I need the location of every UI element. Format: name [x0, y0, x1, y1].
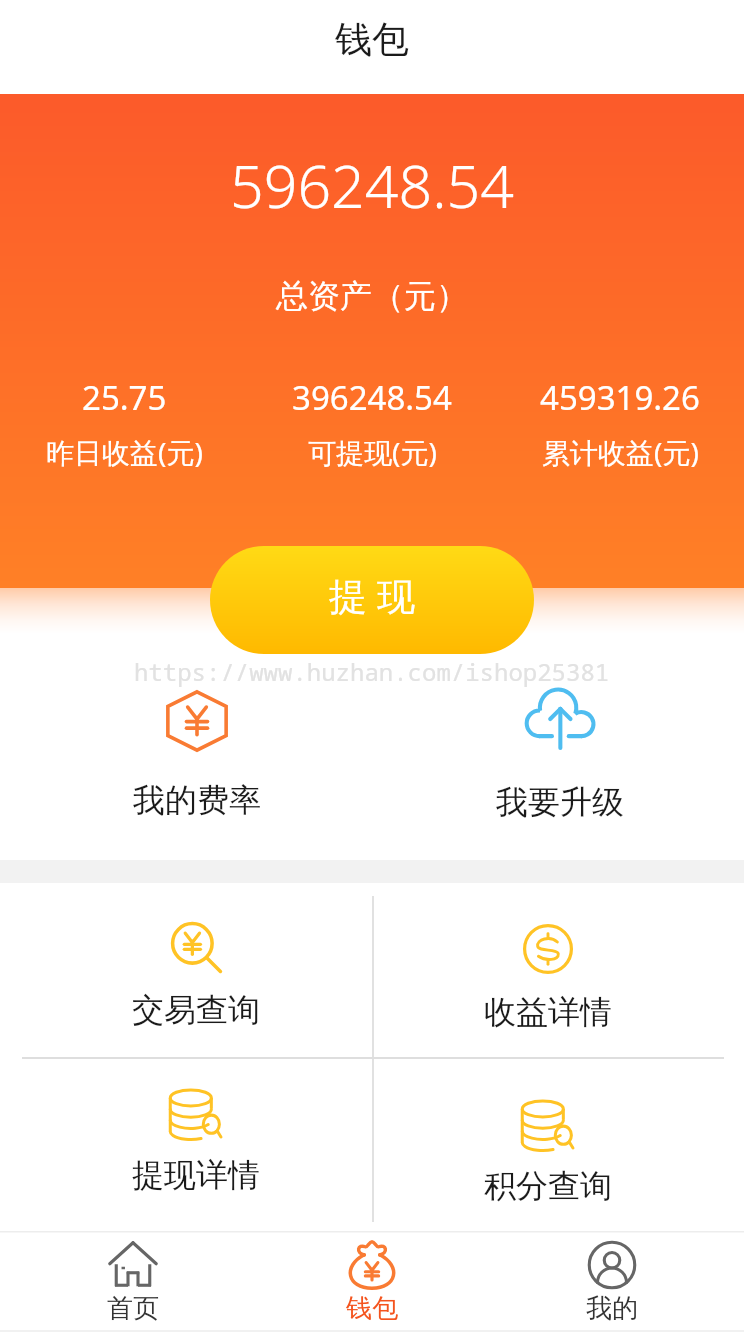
staticText: 我要升级 — [496, 782, 624, 822]
other: 明细查询 — [522, 1097, 574, 1149]
button[interactable]: 我的费率 — [101, 690, 293, 820]
other: 我的费率 — [166, 690, 228, 752]
staticText: 596248.54 — [230, 145, 514, 225]
button[interactable]: 交易查询 — [30, 917, 362, 1057]
button[interactable]: 明细查询 — [382, 1093, 714, 1233]
staticText: 交易查询 — [132, 990, 260, 1030]
staticText: 提 现 — [329, 569, 415, 621]
staticText: 总资产（元） — [276, 276, 468, 316]
other: 交易查询 — [170, 921, 222, 973]
staticText: 459319.26 — [540, 375, 700, 420]
other: 首页 — [108, 1240, 158, 1290]
staticText: https://www.huzhan.com/ishop25381 — [134, 655, 610, 688]
staticText: 积分查询 — [484, 1166, 612, 1206]
other: 明细查询 — [170, 1086, 222, 1138]
staticText: 昨日收益(元) — [46, 433, 203, 471]
staticText: 收益详情 — [484, 992, 612, 1032]
other: 收益详情 — [522, 923, 574, 975]
button[interactable]: 我的 — [552, 1231, 672, 1331]
other: 钱包 — [347, 1240, 397, 1290]
staticText: 钱包 — [346, 1292, 398, 1325]
other: 我要升级 — [525, 684, 595, 754]
staticText: 我的费率 — [133, 780, 261, 820]
staticText: 钱包 — [335, 16, 409, 63]
staticText: 累计收益(元) — [542, 433, 699, 471]
button[interactable]: 首页 — [73, 1231, 193, 1331]
button[interactable]: 我要升级 — [464, 684, 656, 822]
staticText: 首页 — [107, 1292, 159, 1325]
staticText: 25.75 — [82, 375, 167, 420]
button[interactable]: 收益详情 — [382, 919, 714, 1059]
button[interactable]: 钱包 — [312, 1231, 432, 1331]
staticText: 提现详情 — [132, 1155, 260, 1195]
staticText: 396248.54 — [292, 375, 452, 420]
staticText: 可提现(元) — [308, 433, 437, 471]
other: 我的 — [587, 1240, 637, 1290]
staticText: 我的 — [586, 1292, 638, 1325]
button[interactable]: 提 现 — [210, 546, 534, 654]
button[interactable]: 明细查询 — [30, 1082, 362, 1222]
